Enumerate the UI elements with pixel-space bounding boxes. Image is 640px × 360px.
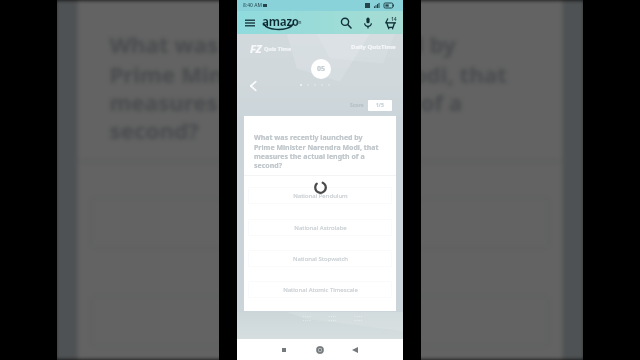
staticText: FZ <box>250 41 262 56</box>
staticText: amazon <box>262 14 302 31</box>
button[interactable]: Recents <box>278 344 290 356</box>
button[interactable]: Home <box>314 344 326 356</box>
button[interactable]: National Pendulum <box>248 187 392 204</box>
staticText: Score <box>350 102 364 109</box>
staticText: National Pendulum <box>234 212 409 237</box>
button[interactable]: National Astrolabe <box>248 219 392 236</box>
staticText: 05 <box>317 64 326 74</box>
staticText: 14 <box>391 16 397 23</box>
button[interactable]: Voice search <box>360 15 375 30</box>
button[interactable]: Menu <box>242 15 257 30</box>
staticText: 8:40 AM <box>243 2 263 9</box>
button[interactable]: Shopping cart <box>382 15 398 31</box>
button[interactable]: Back <box>349 344 361 356</box>
staticText: National Stopwatch <box>293 255 348 263</box>
staticText: Quiz Time <box>264 45 292 52</box>
staticText: .in <box>296 19 302 25</box>
staticText: 1/5 <box>376 102 384 109</box>
staticText: National Atomic Timescale <box>283 286 358 294</box>
staticText: Daily QuizTime <box>351 43 396 51</box>
staticText: National Astrolabe <box>237 310 406 335</box>
staticText: National Pendulum <box>293 192 348 200</box>
button[interactable]: National Pendulum <box>90 197 550 249</box>
button[interactable]: National Atomic Timescale <box>248 281 392 298</box>
staticText: What was recently launched by Prime Mini… <box>109 31 521 145</box>
button[interactable]: Search <box>338 15 353 30</box>
staticText: National Astrolabe <box>294 224 347 232</box>
button[interactable]: National Stopwatch <box>248 250 392 267</box>
button[interactable]: Back <box>245 78 261 94</box>
button[interactable]: National Astrolabe <box>90 295 550 347</box>
staticText: What was recently launched by Prime Mini… <box>254 133 383 170</box>
